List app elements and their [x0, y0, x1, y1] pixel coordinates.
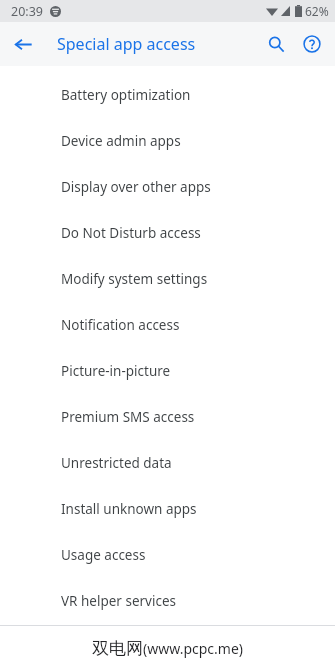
- button[interactable]: Battery optimization: [0, 72, 335, 118]
- staticText: Do Not Disturb access: [61, 224, 201, 242]
- staticText: 20:39: [11, 3, 43, 20]
- staticText: VR helper services: [61, 592, 177, 610]
- button[interactable]: Install unknown apps: [0, 486, 335, 532]
- staticText: Special app access: [57, 33, 196, 55]
- staticText: Install unknown apps: [61, 500, 197, 518]
- staticText: 双电网: [92, 638, 143, 659]
- staticText: Display over other apps: [61, 178, 211, 196]
- staticText: Device admin apps: [61, 132, 181, 150]
- button[interactable]: Premium SMS access: [0, 394, 335, 440]
- button[interactable]: Usage access: [0, 532, 335, 578]
- button[interactable]: Unrestricted data: [0, 440, 335, 486]
- button[interactable]: Picture-in-picture: [0, 348, 335, 394]
- button[interactable]: Notification access: [0, 302, 335, 348]
- button[interactable]: Help: [294, 26, 330, 62]
- staticText: (www.pcpc.me): [143, 639, 244, 658]
- staticText: Notification access: [61, 316, 180, 334]
- staticText: 62%: [305, 3, 329, 19]
- button[interactable]: Back: [6, 27, 40, 61]
- staticText: Battery optimization: [61, 86, 191, 104]
- staticText: Unrestricted data: [61, 454, 172, 472]
- staticText: Modify system settings: [61, 270, 208, 288]
- staticText: Usage access: [61, 546, 146, 564]
- button[interactable]: Display over other apps: [0, 164, 335, 210]
- button[interactable]: Search: [258, 26, 294, 62]
- button[interactable]: Device admin apps: [0, 118, 335, 164]
- button[interactable]: VR helper services: [0, 578, 335, 624]
- button[interactable]: Modify system settings: [0, 256, 335, 302]
- button[interactable]: Do Not Disturb access: [0, 210, 335, 256]
- staticText: Premium SMS access: [61, 408, 195, 426]
- staticText: Picture-in-picture: [61, 362, 171, 380]
